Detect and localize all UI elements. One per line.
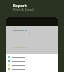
staticText: Export (13, 3, 27, 9)
button[interactable] (6, 17, 58, 26)
staticText: Print & Email (13, 7, 34, 12)
button[interactable] (6, 67, 58, 71)
button[interactable] (6, 59, 58, 63)
button[interactable] (6, 63, 58, 67)
button[interactable] (6, 55, 58, 59)
